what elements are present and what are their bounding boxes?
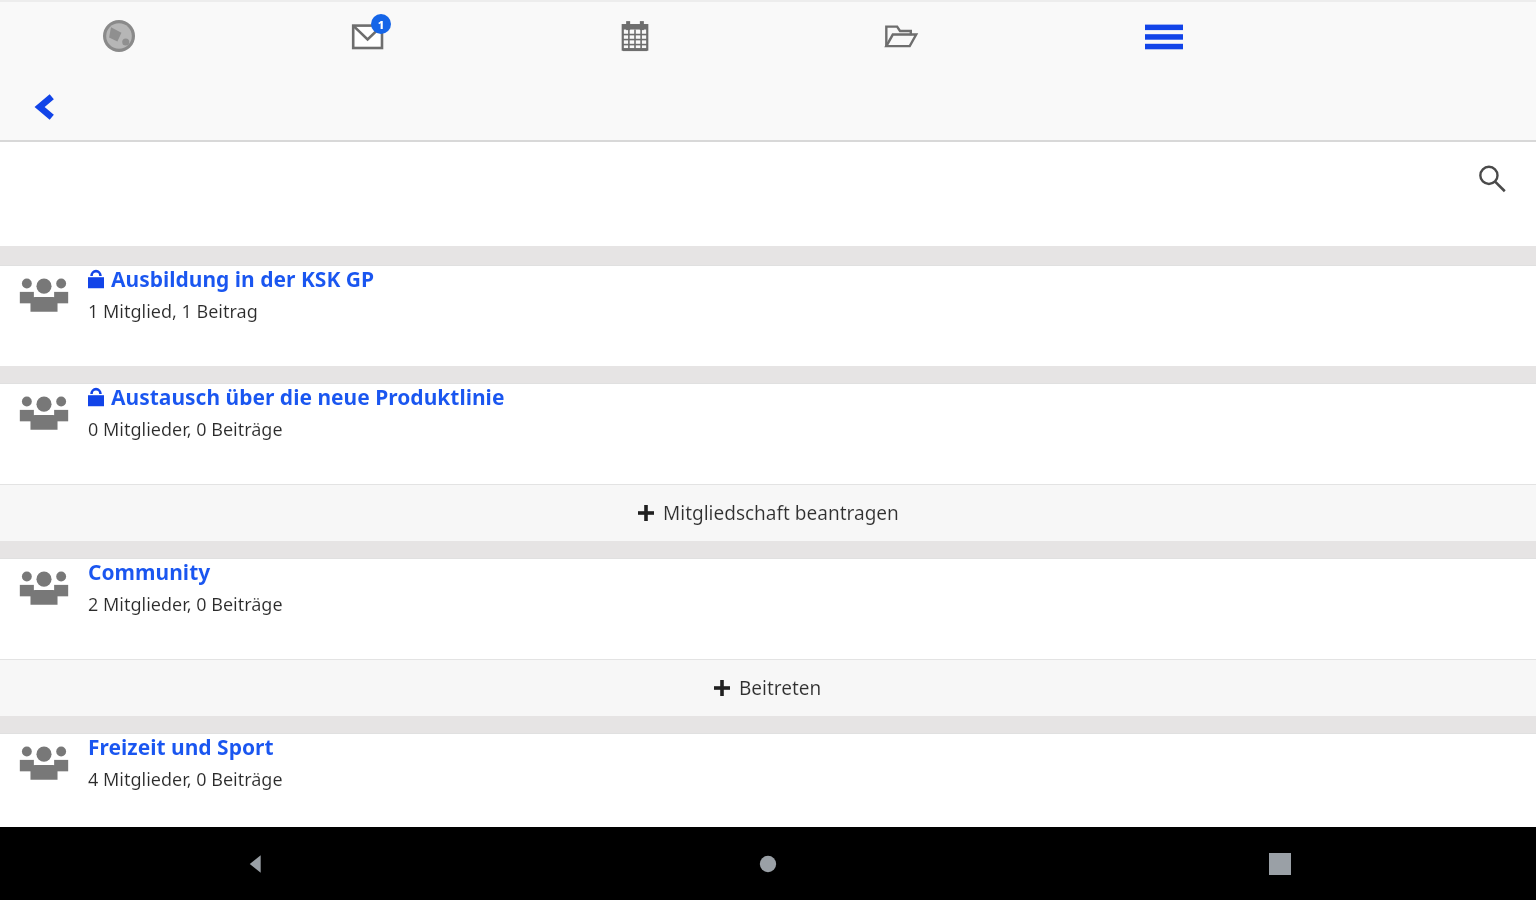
- staticText: 4 Mitglieder, 0 Beiträge: [88, 767, 283, 792]
- button[interactable]: Back: [0, 72, 92, 142]
- staticText: Beitreten: [739, 675, 822, 701]
- staticText: Community: [88, 558, 211, 587]
- button[interactable]: Mitgliedschaft beantragen: [0, 484, 1536, 541]
- button[interactable]: Back: [0, 827, 512, 900]
- staticText: Ausbildung in der KSK GP: [111, 265, 375, 294]
- button[interactable]: Calendar: [502, 0, 768, 72]
- button[interactable]: Search: [1446, 142, 1536, 214]
- button[interactable]: Freizeit und Sport: [0, 733, 1536, 827]
- button[interactable]: Austausch über die neue Produktlinie: [0, 383, 1536, 484]
- button[interactable]: Community: [0, 558, 1536, 659]
- button[interactable]: Beitreten: [0, 659, 1536, 716]
- staticText: Austausch über die neue Produktlinie: [111, 383, 505, 412]
- staticText: Freizeit und Sport: [88, 733, 274, 762]
- staticText: Mitgliedschaft beantragen: [663, 500, 899, 526]
- button[interactable]: Files: [768, 0, 1032, 72]
- button[interactable]: Mail: [238, 0, 502, 72]
- button[interactable]: Home: [512, 827, 1024, 900]
- button[interactable]: Globe: [0, 0, 238, 72]
- button[interactable]: Recents: [1024, 827, 1536, 900]
- staticText: 0 Mitglieder, 0 Beiträge: [88, 417, 283, 442]
- staticText: 2 Mitglieder, 0 Beiträge: [88, 592, 283, 617]
- button[interactable]: Ausbildung in der KSK GP: [0, 265, 1536, 366]
- staticText: 1: [378, 17, 385, 32]
- staticText: 1 Mitglied, 1 Beitrag: [88, 299, 258, 324]
- button[interactable]: Menu: [1032, 0, 1296, 72]
